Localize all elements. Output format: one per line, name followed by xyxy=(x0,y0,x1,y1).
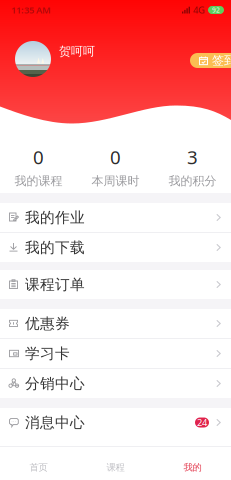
staticText: 我的 xyxy=(183,461,201,473)
staticText: 首页 xyxy=(29,461,47,473)
staticText: 课程订单 xyxy=(25,275,85,293)
button[interactable]: 我的作业 xyxy=(0,203,231,232)
staticText: 签到 xyxy=(212,53,231,68)
button[interactable]: 签到 xyxy=(190,53,231,68)
staticText: 优惠券 xyxy=(25,314,70,332)
staticText: 我的作业 xyxy=(25,208,85,226)
button[interactable]: 课程 xyxy=(77,447,154,480)
button[interactable]: 我的下载 xyxy=(0,233,231,262)
staticText: 消息中心 xyxy=(25,413,85,431)
staticText: 分销中心 xyxy=(25,374,85,392)
button[interactable]: 分销中心 xyxy=(0,369,231,398)
staticText: 本周课时 xyxy=(91,173,139,188)
staticText: 11:35 AM xyxy=(11,4,51,16)
staticText: 课程 xyxy=(106,461,124,473)
staticText: 学习卡 xyxy=(25,344,70,362)
button[interactable]: 学习卡 xyxy=(0,339,231,368)
staticText: 贺呵呵 xyxy=(59,44,95,59)
button[interactable]: 我的 xyxy=(154,447,231,480)
staticText: 我的下载 xyxy=(25,238,85,256)
button[interactable]: 课程订单 xyxy=(0,270,231,299)
button[interactable]: 消息中心 xyxy=(0,408,231,437)
staticText: 0 xyxy=(110,145,121,169)
staticText: 0 xyxy=(33,145,44,169)
staticText: 我的课程 xyxy=(14,173,62,188)
staticText: 24 xyxy=(197,416,207,429)
button[interactable]: 首页 xyxy=(0,447,77,480)
staticText: 3 xyxy=(187,145,198,169)
button[interactable]: 优惠券 xyxy=(0,309,231,338)
staticText: 4G xyxy=(193,4,205,16)
staticText: 我的积分 xyxy=(168,173,216,188)
staticText: 92 xyxy=(212,6,220,14)
